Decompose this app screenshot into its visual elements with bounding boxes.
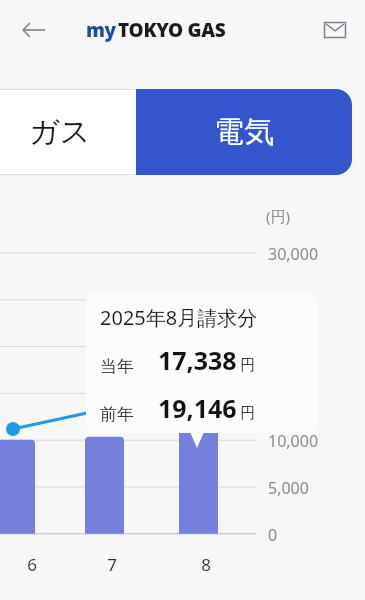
button[interactable]: Back xyxy=(14,10,54,50)
staticText: TOKYO GAS xyxy=(118,17,226,43)
staticText: 前年 xyxy=(100,404,134,425)
button[interactable]: my xyxy=(86,17,226,43)
staticText: 当年 xyxy=(100,356,134,377)
staticText: 円 xyxy=(240,356,255,375)
staticText: 0 xyxy=(268,524,348,546)
staticText: (円) xyxy=(266,206,291,226)
staticText: 17,338 xyxy=(158,343,237,377)
staticText: ガス xyxy=(29,113,91,151)
staticText: 円 xyxy=(240,404,255,423)
staticText: 7 xyxy=(104,553,120,576)
staticText: 8 xyxy=(198,553,214,576)
staticText: 10,000 xyxy=(268,430,348,452)
staticText: 2025年8月請求分 xyxy=(100,304,258,331)
button[interactable]: 電気 xyxy=(136,89,352,175)
button[interactable]: Mail xyxy=(315,10,355,50)
staticText: 30,000 xyxy=(268,243,348,265)
button[interactable]: ガス xyxy=(0,89,136,175)
staticText: 電気 xyxy=(214,113,274,151)
staticText: 19,146 xyxy=(158,391,237,425)
staticText: 6 xyxy=(24,553,40,576)
staticText: my xyxy=(86,17,116,43)
staticText: 5,000 xyxy=(268,477,348,499)
